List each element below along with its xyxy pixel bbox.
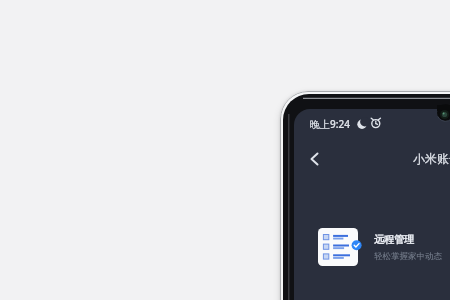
staticText: 晚上9:24 [310,117,350,131]
staticText: 远程管理 [374,233,414,246]
staticText: 轻松掌握家中动态 [374,251,442,262]
staticText: 小米账号 [413,151,450,166]
button[interactable] [312,220,450,272]
button[interactable] [304,147,328,171]
